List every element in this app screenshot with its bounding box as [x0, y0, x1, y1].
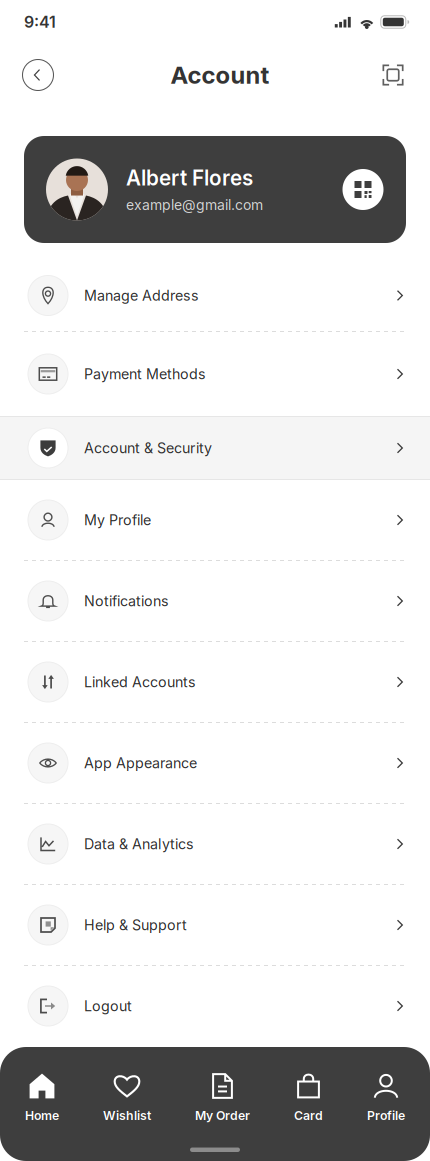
button[interactable]: Help & Support: [0, 885, 430, 965]
staticText: Account & Security: [84, 439, 212, 457]
staticText: Linked Accounts: [84, 673, 196, 691]
button[interactable]: Card: [294, 1073, 323, 1123]
staticText: 9:41: [24, 12, 56, 32]
button[interactable]: My Order: [195, 1073, 250, 1123]
button[interactable]: Payment Methods: [0, 332, 430, 416]
staticText: Payment Methods: [84, 365, 206, 383]
button[interactable]: Notifications: [0, 561, 430, 641]
staticText: App Appearance: [84, 754, 197, 772]
staticText: Card: [294, 1108, 323, 1123]
staticText: Help & Support: [84, 916, 187, 934]
staticText: My Profile: [84, 511, 151, 529]
button[interactable]: Back: [16, 53, 60, 97]
staticText: Home: [25, 1108, 59, 1123]
button[interactable]: Wishlist: [103, 1073, 151, 1123]
staticText: Profile: [367, 1108, 405, 1123]
button[interactable]: Account & Security: [0, 416, 430, 480]
button[interactable]: Logout: [0, 966, 430, 1046]
button[interactable]: Manage Address: [0, 260, 430, 331]
button[interactable]: Home: [25, 1073, 59, 1123]
staticText: My Order: [195, 1108, 250, 1123]
staticText: Logout: [84, 997, 132, 1015]
staticText: Manage Address: [84, 287, 199, 304]
staticText: Wishlist: [103, 1108, 151, 1123]
staticText: Data & Analytics: [84, 835, 194, 853]
staticText: Account: [170, 60, 269, 89]
button[interactable]: My Profile: [0, 480, 430, 560]
staticText: Notifications: [84, 592, 169, 610]
staticText: example@gmail.com: [126, 196, 263, 213]
button[interactable]: Scan code: [371, 53, 415, 97]
button[interactable]: Show QR code: [339, 165, 387, 213]
staticText: Albert Flores: [126, 165, 253, 190]
button[interactable]: App Appearance: [0, 723, 430, 803]
button[interactable]: Linked Accounts: [0, 642, 430, 722]
button[interactable]: Profile: [367, 1073, 405, 1123]
button[interactable]: Data & Analytics: [0, 804, 430, 884]
